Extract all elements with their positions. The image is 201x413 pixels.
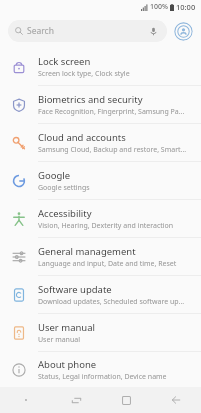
staticText: Biometrics and security xyxy=(38,93,143,106)
button[interactable]: Account xyxy=(173,21,193,41)
staticText: 10:00 xyxy=(176,2,196,12)
staticText: Search xyxy=(27,25,54,37)
staticText: Lock screen xyxy=(38,55,91,68)
button[interactable]: Voice search xyxy=(146,24,160,38)
staticText: Status, Legal information, Device name xyxy=(38,372,167,382)
staticText: Software update xyxy=(38,283,112,296)
staticText: Face Recognition, Fingerprint, Samsung P… xyxy=(38,107,185,117)
button[interactable]: Recent apps xyxy=(51,387,101,413)
button[interactable]: Cloud and accounts xyxy=(0,124,201,161)
staticText: 100% xyxy=(150,2,168,12)
staticText: Vision, Hearing, Dexterity and interacti… xyxy=(38,221,174,231)
button[interactable]: General management xyxy=(0,238,201,275)
staticText: Accessibility xyxy=(38,207,92,220)
staticText: Language and input, Date and time, Reset xyxy=(38,259,177,269)
button[interactable]: Software update xyxy=(0,276,201,313)
button[interactable]: Biometrics and security xyxy=(0,86,201,123)
staticText: Google settings xyxy=(38,183,90,193)
staticText: User manual xyxy=(38,335,80,345)
button[interactable]: User manual xyxy=(0,314,201,351)
button[interactable]: Home xyxy=(101,387,151,413)
button[interactable]: Google xyxy=(0,162,201,199)
button[interactable]: About phone xyxy=(0,352,201,387)
staticText: Screen lock type, Clock style xyxy=(38,69,130,79)
staticText: General management xyxy=(38,245,136,258)
staticText: Download updates, Scheduled software up.… xyxy=(38,297,185,307)
staticText: Cloud and accounts xyxy=(38,131,126,144)
staticText: About phone xyxy=(38,358,97,371)
button[interactable]: Accessibility xyxy=(0,200,201,237)
staticText: User manual xyxy=(38,321,95,334)
staticText: Google xyxy=(38,169,71,182)
button[interactable]: Lock screen xyxy=(0,48,201,85)
staticText: Samsung Cloud, Backup and restore, Smart… xyxy=(38,145,187,155)
button[interactable]: Back xyxy=(151,387,201,413)
button[interactable]: Search xyxy=(8,20,167,42)
